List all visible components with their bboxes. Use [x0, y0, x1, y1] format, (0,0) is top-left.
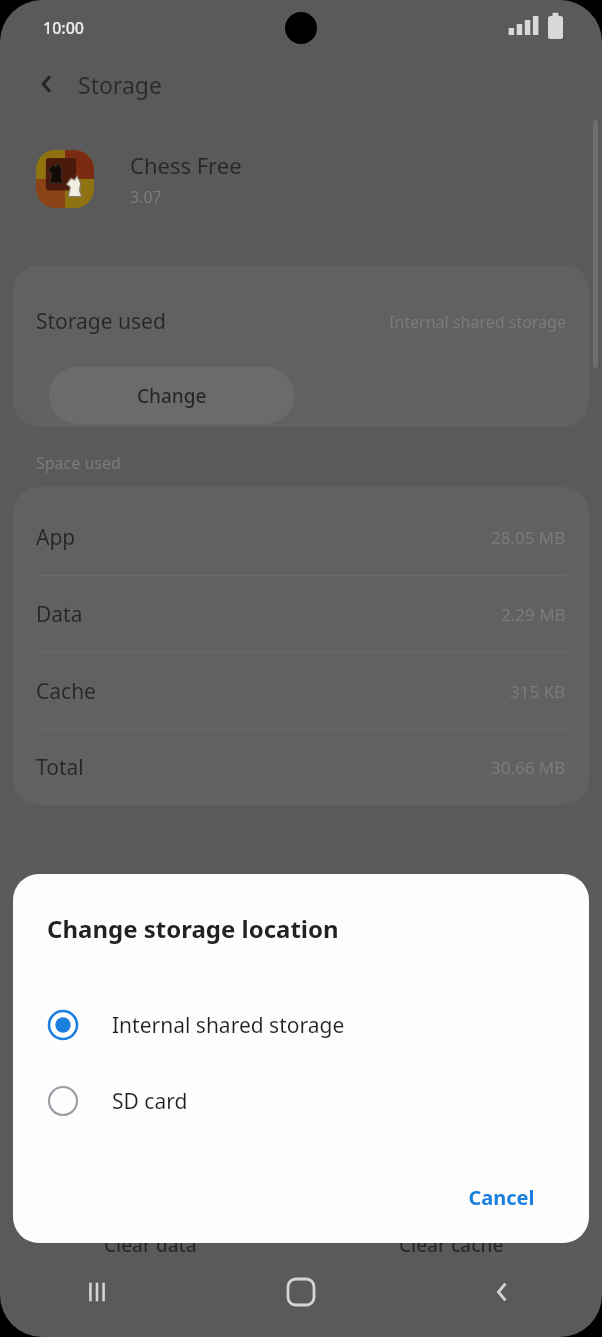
button[interactable]: App [13, 499, 589, 576]
staticText: 30.66 MB [491, 756, 566, 779]
staticText: Cache [36, 677, 96, 706]
staticText: App [36, 523, 76, 552]
staticText: Change [137, 383, 207, 409]
button[interactable]: Internal shared storage [13, 987, 589, 1063]
staticText: 3.07 [130, 186, 162, 208]
staticText: Chess Free [130, 150, 242, 180]
staticText: Storage used [36, 307, 166, 336]
staticText: Space used [36, 452, 121, 474]
staticText: Cancel [468, 1184, 535, 1211]
button[interactable]: Data [13, 576, 589, 653]
staticText: Internal shared storage [389, 311, 566, 333]
staticText: 2.29 MB [501, 603, 566, 626]
button[interactable]: Back [26, 62, 70, 106]
button[interactable]: Total [13, 730, 589, 805]
staticText: Clear cache [399, 1232, 504, 1258]
button[interactable]: SD card [13, 1063, 589, 1139]
staticText: Internal shared storage [112, 1011, 345, 1040]
staticText: 315 KB [510, 680, 566, 703]
staticText: Data [36, 600, 83, 629]
button[interactable]: Recent apps [0, 1247, 200, 1337]
staticText: 28.05 MB [491, 526, 566, 549]
button[interactable]: Cancel [450, 1174, 553, 1221]
staticText: SD card [112, 1087, 188, 1116]
staticText: Change storage location [47, 912, 339, 945]
button[interactable]: Change [49, 367, 294, 424]
staticText: Storage [78, 69, 162, 100]
button[interactable]: Home [200, 1247, 401, 1337]
button[interactable]: Back [401, 1247, 602, 1337]
button[interactable]: Cache [13, 653, 589, 730]
staticText: Total [36, 753, 84, 782]
staticText: Clear data [104, 1232, 197, 1258]
staticText: 10:00 [43, 17, 84, 39]
